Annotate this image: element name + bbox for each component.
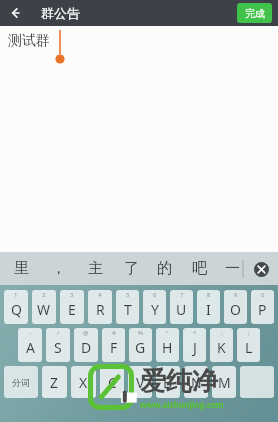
staticText: M xyxy=(218,373,231,392)
staticText: 8 xyxy=(207,291,211,299)
staticText: Q xyxy=(11,300,22,319)
staticText: / xyxy=(57,329,60,337)
staticText: " xyxy=(166,329,169,337)
button[interactable]: V xyxy=(128,366,152,398)
button[interactable]: @ xyxy=(74,328,98,362)
staticText: @ xyxy=(83,329,89,337)
button[interactable]: 的 xyxy=(151,252,177,285)
button[interactable]: - xyxy=(18,328,42,362)
button[interactable]: 分词 xyxy=(4,366,38,398)
staticText: R xyxy=(96,300,105,319)
button[interactable]: # xyxy=(102,328,125,362)
staticText: 完成 xyxy=(245,7,265,20)
button[interactable]: * xyxy=(183,328,206,362)
button[interactable]: 8 xyxy=(197,290,220,324)
button[interactable]: C xyxy=(100,366,124,398)
button[interactable]: 了 xyxy=(118,252,144,285)
staticText: 分词 xyxy=(12,377,30,388)
staticText: 1 xyxy=(14,291,18,299)
staticText: T xyxy=(124,300,132,319)
button[interactable]: 里 xyxy=(8,252,34,285)
staticText: K xyxy=(217,338,226,357)
staticText: E xyxy=(68,300,76,319)
button[interactable]: Z xyxy=(42,366,67,398)
staticText: L xyxy=(245,338,253,357)
staticText: F xyxy=(110,338,118,357)
staticText: A xyxy=(26,338,35,357)
staticText: 了 xyxy=(124,259,139,278)
staticText: I xyxy=(206,300,211,319)
staticText: D xyxy=(81,338,92,357)
button[interactable]: % xyxy=(129,328,152,362)
button[interactable]: 4 xyxy=(88,290,112,324)
staticText: www.aichunjing.com xyxy=(140,399,224,410)
button[interactable]: Close keyboard xyxy=(251,259,271,279)
button[interactable]: 一 xyxy=(219,252,245,285)
staticText: Z xyxy=(50,373,59,392)
button[interactable]: 1 xyxy=(4,290,28,324)
button[interactable]: Delete xyxy=(240,366,274,398)
staticText: W xyxy=(37,300,51,319)
button[interactable]: : xyxy=(210,328,233,362)
button[interactable]: N xyxy=(184,366,208,398)
staticText: 5 xyxy=(126,291,130,299)
button[interactable]: X xyxy=(71,366,96,398)
staticText: 的 xyxy=(157,259,172,278)
staticText: : xyxy=(221,329,223,337)
staticText: J xyxy=(193,338,197,357)
staticText: 3 xyxy=(70,291,74,299)
button[interactable]: 6 xyxy=(143,290,166,324)
button[interactable]: 3 xyxy=(60,290,84,324)
button[interactable]: M xyxy=(212,366,236,398)
staticText: 测试群 xyxy=(8,32,50,50)
button[interactable]: 主 xyxy=(82,252,108,285)
staticText: 主 xyxy=(88,259,103,278)
staticText: 群公告 xyxy=(41,5,80,21)
staticText: - xyxy=(29,329,31,337)
staticText: 0 xyxy=(261,291,265,299)
staticText: ， xyxy=(51,259,66,278)
staticText: 4 xyxy=(98,291,102,299)
button[interactable]: B xyxy=(156,366,180,398)
button[interactable]: 吧 xyxy=(186,252,212,285)
button[interactable]: 5 xyxy=(116,290,139,324)
staticText: B xyxy=(163,373,173,392)
button[interactable]: Back xyxy=(0,0,34,26)
staticText: C xyxy=(108,373,117,392)
staticText: 吧 xyxy=(192,259,207,278)
staticText: * xyxy=(193,329,197,337)
staticText: N xyxy=(191,373,202,392)
staticText: 9 xyxy=(234,291,238,299)
staticText: 7 xyxy=(180,291,184,299)
staticText: P xyxy=(258,300,267,319)
staticText: 6 xyxy=(153,291,157,299)
staticText: V xyxy=(136,373,145,392)
staticText: 一 xyxy=(225,259,240,278)
button[interactable]: 2 xyxy=(32,290,56,324)
button[interactable]: ; xyxy=(237,328,260,362)
staticText: 2 xyxy=(42,291,46,299)
staticText: G xyxy=(135,338,146,357)
staticText: % xyxy=(138,329,143,337)
staticText: X xyxy=(79,373,88,392)
staticText: 里 xyxy=(14,259,29,278)
staticText: S xyxy=(54,338,62,357)
button[interactable]: / xyxy=(46,328,70,362)
staticText: O xyxy=(230,300,241,319)
staticText: U xyxy=(176,300,187,319)
staticText: Y xyxy=(151,300,159,319)
button[interactable]: " xyxy=(156,328,179,362)
button[interactable]: ， xyxy=(45,252,71,285)
button[interactable]: 9 xyxy=(224,290,247,324)
staticText: H xyxy=(162,338,173,357)
staticText: ; xyxy=(248,329,250,337)
button[interactable]: 完成 xyxy=(237,3,272,23)
staticText: # xyxy=(112,329,116,337)
button[interactable]: 0 xyxy=(251,290,274,324)
button[interactable]: 7 xyxy=(170,290,193,324)
staticText: 爱纯净 xyxy=(140,365,218,398)
